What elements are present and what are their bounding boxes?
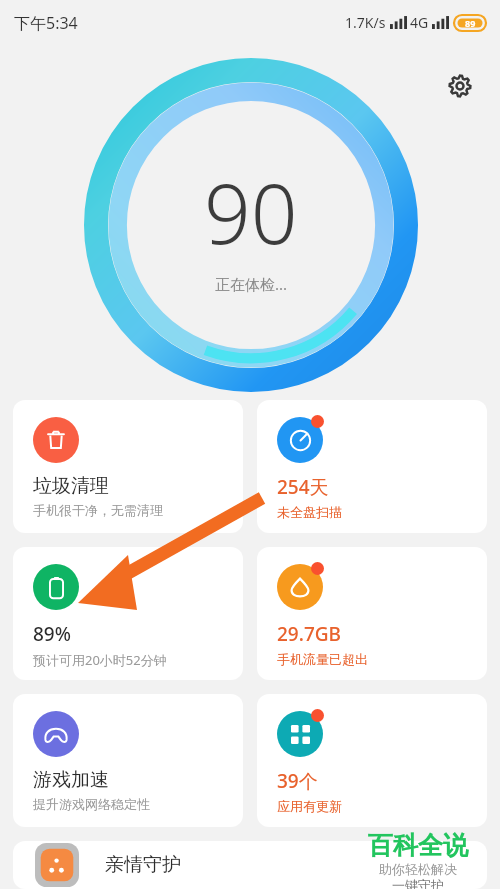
staticText: 39个 — [277, 768, 318, 794]
button[interactable]: 游戏加速 — [13, 694, 243, 827]
staticText: 89% — [33, 621, 71, 647]
staticText: 1.7K/s — [345, 13, 386, 32]
staticText: 手机流量已超出 — [277, 651, 368, 667]
button[interactable]: Settings — [435, 61, 485, 111]
staticText: 89 — [465, 17, 476, 29]
staticText: 正在体检... — [215, 274, 288, 294]
button[interactable]: 亲情守护 — [13, 841, 487, 889]
staticText: 预计可用20小时52分钟 — [33, 651, 167, 669]
staticText: 未全盘扫描 — [277, 504, 342, 520]
staticText: 下午5:34 — [14, 12, 78, 34]
button[interactable]: 89% — [13, 547, 243, 680]
staticText: 助你轻松解决 — [379, 861, 457, 877]
staticText: 手机很干净，无需清理 — [33, 502, 163, 518]
staticText: 亲情守护 — [105, 853, 181, 877]
button[interactable]: 90 — [84, 58, 418, 392]
staticText: 90 — [204, 156, 298, 268]
button[interactable]: 29.7GB — [257, 547, 487, 680]
staticText: 百科全说 — [368, 830, 468, 861]
button[interactable]: 254天 — [257, 400, 487, 533]
staticText: 垃圾清理 — [33, 474, 109, 498]
staticText: 应用有更新 — [277, 798, 342, 814]
button[interactable]: 垃圾清理 — [13, 400, 243, 533]
staticText: 一键守护 — [392, 877, 444, 889]
staticText: 提升游戏网络稳定性 — [33, 796, 150, 812]
button[interactable]: 39个 — [257, 694, 487, 827]
staticText: 254天 — [277, 474, 329, 500]
staticText: 4G — [410, 13, 429, 32]
staticText: 游戏加速 — [33, 768, 109, 792]
staticText: 29.7GB — [277, 621, 342, 647]
